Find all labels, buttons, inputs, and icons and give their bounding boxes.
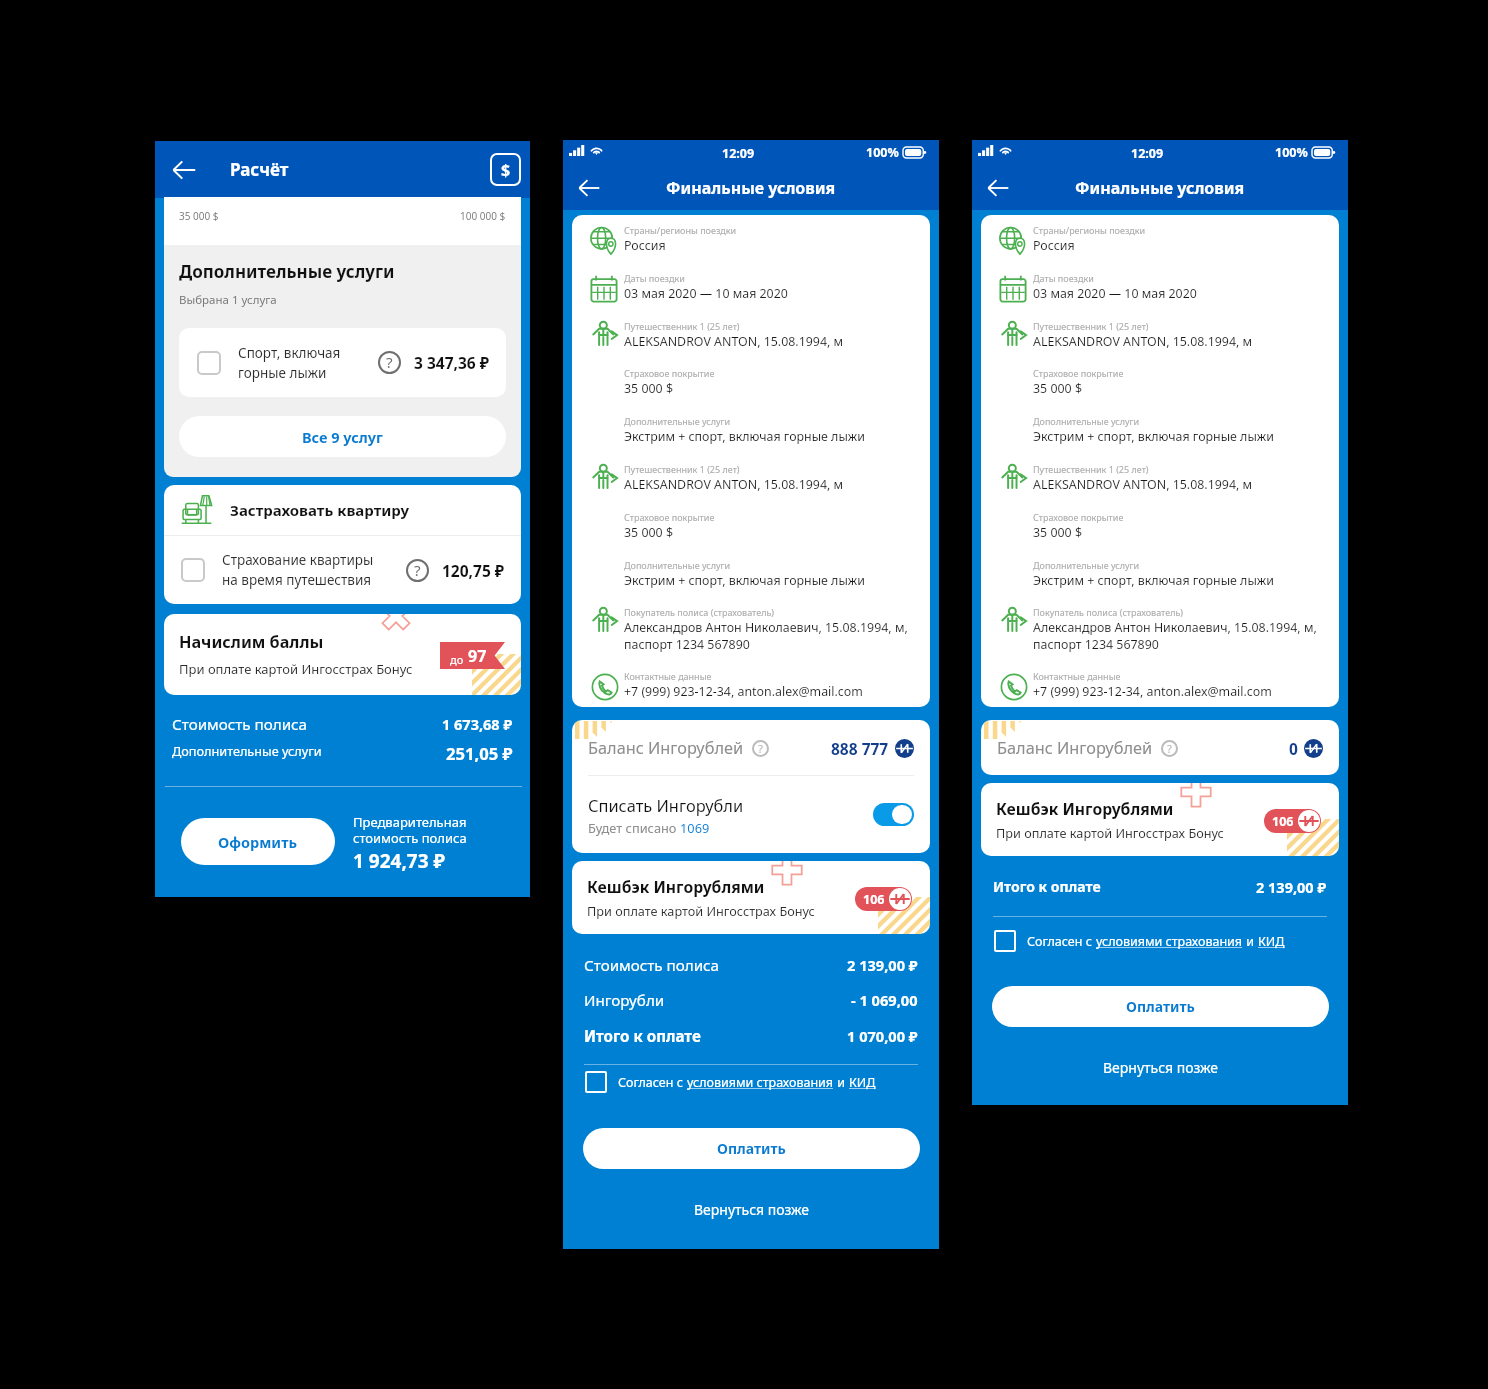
button[interactable]: Кешбэк Ингорублями (572, 861, 930, 934)
staticText: Путешественник 1 (25 лет) (624, 463, 740, 475)
staticText: Страховое покрытие (624, 511, 715, 523)
staticText: ? (414, 560, 421, 581)
staticText: Дополнительные услуги (1033, 559, 1140, 571)
staticText: 35 000 $ (179, 209, 219, 223)
staticText: ALEKSANDROV ANTON, 15.08.1994, м (1033, 333, 1253, 350)
staticText: ? (386, 352, 393, 373)
staticText: Будет списано (588, 819, 680, 836)
staticText: 1 673,68 ₽ (442, 714, 513, 734)
staticText: 251,05 ₽ (446, 742, 513, 765)
button[interactable]: Toggle (873, 803, 914, 826)
button[interactable]: Списать Ингорубли (588, 776, 914, 853)
staticText: Страховое покрытие (1033, 367, 1124, 379)
staticText: 03 мая 2020 — 10 мая 2020 (624, 285, 788, 302)
button[interactable]: Согласен с (994, 930, 1285, 952)
staticText: Баланс Ингорублей (997, 737, 1153, 759)
button[interactable]: Вернуться позже (992, 1058, 1329, 1077)
button[interactable]: Согласен с (585, 1071, 876, 1093)
staticText: Путешественник 1 (25 лет) (624, 320, 740, 332)
button[interactable]: Back (574, 173, 604, 203)
staticText: Согласен с (1027, 933, 1096, 950)
button[interactable]: Вернуться позже (583, 1200, 920, 1219)
button[interactable]: Кешбэк Ингорублями (981, 783, 1339, 856)
button[interactable]: Help (752, 740, 769, 757)
staticText: При оплате картой Ингосстрах Бонус (587, 902, 815, 919)
button[interactable]: Застраховать квартиру (164, 485, 521, 604)
staticText: ALEKSANDROV ANTON, 15.08.1994, м (624, 476, 844, 493)
staticText: Дополнительные услуги (179, 260, 395, 283)
staticText: Итого к оплате (584, 1026, 701, 1047)
staticText: Дополнительные услуги (624, 415, 731, 427)
staticText: 106 (1272, 813, 1294, 830)
staticText: Оформить (218, 832, 298, 852)
staticText: КИД (1258, 933, 1285, 950)
staticText: 2 139,00 ₽ (847, 955, 918, 975)
staticText: до (450, 652, 464, 667)
staticText: Финальные условия (1075, 177, 1245, 199)
button[interactable]: Help (1161, 740, 1178, 757)
staticText: ? (1167, 741, 1172, 756)
staticText: 2 139,00 ₽ (1256, 877, 1327, 897)
staticText: Контактные данные (1033, 670, 1121, 682)
button[interactable]: Спорт, включая горные лыжи (179, 328, 506, 397)
staticText: ? (758, 741, 763, 756)
staticText: условиями страхования (1096, 933, 1243, 950)
staticText: Финальные условия (666, 177, 836, 199)
staticText: и (1243, 933, 1258, 950)
button[interactable]: Help (378, 351, 401, 374)
staticText: Итого к оплате (993, 877, 1101, 896)
staticText: Списать Ингорубли (588, 794, 744, 816)
staticText: Дополнительные услуги (1033, 415, 1140, 427)
staticText: 120,75 ₽ (442, 560, 505, 581)
staticText: 35 000 $ (1033, 524, 1082, 541)
staticText: 100% (1275, 144, 1308, 161)
staticText: 35 000 $ (624, 380, 673, 397)
button[interactable]: Начислим баллы (164, 614, 521, 695)
button[interactable]: Currency (490, 153, 521, 186)
staticText: Экстрим + спорт, включая горные лыжи (624, 428, 865, 445)
staticText: $ (501, 159, 511, 181)
staticText: Дополнительные услуги (172, 742, 322, 759)
staticText: Ингорубли (584, 990, 665, 1011)
staticText: Даты поездки (1033, 272, 1094, 284)
staticText: Стоимость полиса (584, 955, 720, 976)
staticText: ALEKSANDROV ANTON, 15.08.1994, м (624, 333, 844, 350)
staticText: 03 мая 2020 — 10 мая 2020 (1033, 285, 1197, 302)
staticText: При оплате картой Ингосстрах Бонус (996, 824, 1224, 841)
staticText: +7 (999) 923-12-34, anton.alex@mail.com (624, 683, 863, 700)
staticText: ALEKSANDROV ANTON, 15.08.1994, м (1033, 476, 1253, 493)
staticText: 1 924,73 ₽ (353, 848, 445, 874)
staticText: 3 347,36 ₽ (414, 352, 489, 373)
staticText: Путешественник 1 (25 лет) (1033, 320, 1149, 332)
button[interactable]: Back (983, 173, 1013, 203)
staticText: Покупатель полиса (страхователь) (624, 606, 775, 618)
staticText: Оплатить (1126, 997, 1195, 1016)
staticText: Александров Антон Николаевич, 15.08.1994… (624, 619, 908, 653)
staticText: Экстрим + спорт, включая горные лыжи (1033, 428, 1274, 445)
staticText: Начислим баллы (179, 631, 324, 653)
staticText: Предварительная стоимость полиса (353, 813, 467, 846)
button[interactable]: Back (167, 153, 201, 187)
button[interactable]: Оформить (181, 818, 335, 865)
staticText: 0 (1289, 738, 1298, 759)
staticText: Стоимость полиса (172, 714, 308, 735)
button[interactable]: Оплатить (992, 986, 1329, 1027)
staticText: Страны/регионы поездки (624, 224, 737, 236)
button[interactable]: Все 9 услуг (179, 416, 506, 457)
staticText: Страхование квартиры на время путешестви… (222, 551, 374, 589)
staticText: Экстрим + спорт, включая горные лыжи (624, 572, 865, 589)
staticText: Баланс Ингорублей (588, 737, 744, 759)
staticText: Спорт, включая горные лыжи (238, 344, 341, 382)
staticText: Россия (624, 237, 666, 254)
staticText: 12:09 (1131, 145, 1164, 162)
staticText: условиями страхования (687, 1074, 834, 1091)
staticText: Вернуться позже (694, 1200, 810, 1219)
button[interactable]: Help (406, 559, 429, 582)
staticText: Вернуться позже (1103, 1058, 1219, 1077)
staticText: 888 777 (831, 738, 889, 759)
staticText: +7 (999) 923-12-34, anton.alex@mail.com (1033, 683, 1272, 700)
staticText: и (834, 1074, 849, 1091)
staticText: Страховое покрытие (1033, 511, 1124, 523)
staticText: Застраховать квартиру (230, 500, 409, 520)
button[interactable]: Оплатить (583, 1128, 920, 1169)
